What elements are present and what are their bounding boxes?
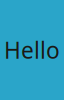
staticText: Hello <box>4 35 60 65</box>
